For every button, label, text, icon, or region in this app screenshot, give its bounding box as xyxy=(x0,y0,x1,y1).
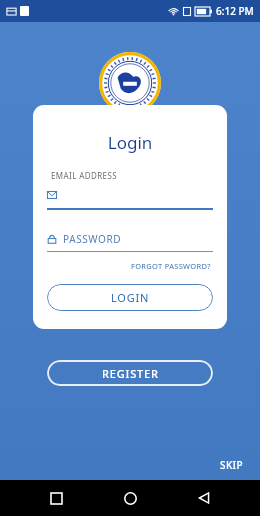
staticText: SKIP xyxy=(220,458,244,472)
staticText: FORGOT PASSWORD? xyxy=(131,261,211,271)
button[interactable]: PASSWORD xyxy=(47,232,213,252)
button[interactable] xyxy=(47,186,213,210)
button[interactable]: SKIP xyxy=(216,455,248,475)
button[interactable]: Back xyxy=(186,480,222,516)
staticText: 6:12 PM xyxy=(216,4,254,18)
button[interactable]: Home xyxy=(112,480,148,516)
button[interactable]: Recent apps xyxy=(38,480,74,516)
staticText: EMAIL ADDRESS xyxy=(51,170,117,181)
button[interactable]: LOGIN xyxy=(47,284,213,311)
staticText: PASSWORD xyxy=(63,232,122,246)
staticText: REGISTER xyxy=(102,366,159,381)
button[interactable]: FORGOT PASSWORD? xyxy=(129,259,213,273)
staticText: Login xyxy=(47,131,213,154)
staticText: LOGIN xyxy=(111,290,150,305)
button[interactable]: REGISTER xyxy=(47,360,213,386)
